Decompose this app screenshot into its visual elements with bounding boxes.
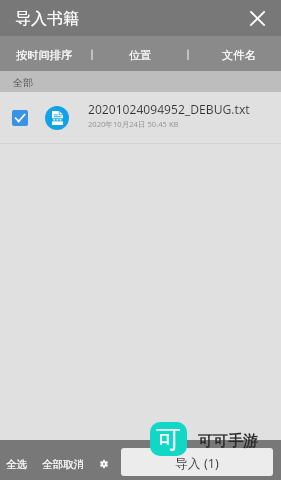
staticText: 可可手游 xyxy=(198,432,258,451)
button[interactable]: 位置 xyxy=(92,36,188,71)
button[interactable]: 导入 (1) xyxy=(121,448,273,476)
staticText: 2020年10月24日 50.45 KB xyxy=(88,119,179,129)
staticText: 文件名 xyxy=(222,48,256,62)
button[interactable]: Close xyxy=(239,0,275,36)
staticText: 全部取消 xyxy=(42,458,85,471)
button[interactable]: 20201024094952_DEBUG.txt xyxy=(0,92,281,143)
staticText: 导入书籍 xyxy=(15,9,79,29)
staticText: 20201024094952_DEBUG.txt xyxy=(88,101,250,117)
button[interactable]: Settings xyxy=(94,454,114,474)
staticText: 可 xyxy=(156,424,181,455)
button[interactable]: 文件名 xyxy=(195,36,281,71)
staticText: 全部 xyxy=(13,76,33,89)
button[interactable]: 按时间排序 xyxy=(0,36,87,71)
staticText: 按时间排序 xyxy=(16,48,72,62)
staticText: 全选 xyxy=(6,458,28,471)
staticText: 位置 xyxy=(129,48,152,62)
button[interactable]: 全选 xyxy=(0,450,34,478)
staticText: 导入 (1) xyxy=(175,454,219,471)
button[interactable]: 全部取消 xyxy=(36,450,90,478)
